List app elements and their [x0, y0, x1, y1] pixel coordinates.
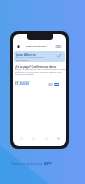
button[interactable]: Pagar	[54, 83, 59, 86]
staticText: adelante con el proceso de pago seguro e…	[15, 71, 62, 74]
button[interactable]: Inicio	[17, 134, 25, 142]
button[interactable]: Juan Alberto	[14, 51, 65, 62]
staticText: APP	[44, 161, 52, 166]
staticText: Todo en proceso	[11, 161, 44, 166]
button[interactable]: Perfil	[54, 134, 62, 142]
staticText: $1,250.00	[15, 82, 30, 86]
staticText: de verificar	[16, 59, 29, 62]
staticText: Tienes un pago pendiente	[16, 56, 45, 59]
staticText: Revisa la informacion de tu recibo antes…	[15, 68, 66, 71]
staticText: Pagar	[54, 83, 59, 86]
button[interactable]: Buscar	[29, 134, 37, 142]
staticText: Salir	[56, 45, 61, 48]
staticText: Juan Alberto	[16, 53, 36, 57]
button[interactable]: Ver	[48, 83, 53, 86]
button[interactable]: Home	[16, 44, 21, 49]
staticText: Ver	[49, 83, 52, 86]
staticText: ¿Es tu pago? Confirma tus datos	[15, 65, 57, 69]
button[interactable]: Pagos	[42, 134, 50, 142]
button[interactable]: Salir	[55, 45, 62, 48]
staticText: plataforma digital.	[15, 73, 34, 76]
staticText: Total a pagar	[15, 79, 30, 82]
staticText: Pagos pendientes	[26, 44, 47, 47]
